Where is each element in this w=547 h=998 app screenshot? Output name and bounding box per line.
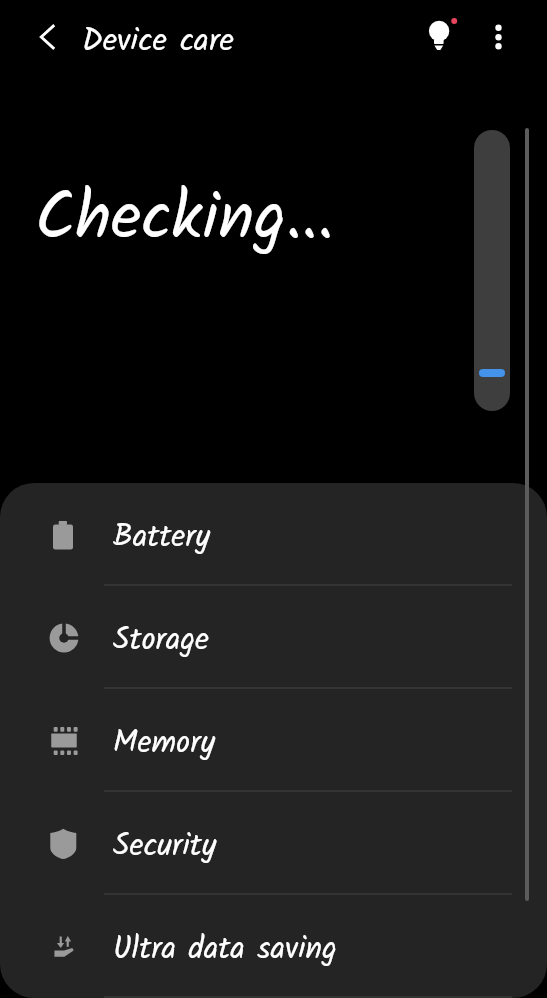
staticText: Storage (113, 616, 209, 665)
staticText: Checking... (35, 167, 334, 274)
staticText: Memory (113, 719, 215, 768)
button[interactable]: Security (0, 792, 547, 895)
staticText: Ultra data saving (113, 925, 337, 974)
button[interactable]: More options (474, 12, 523, 61)
staticText: Battery (113, 513, 211, 562)
button[interactable]: Ultra data saving (0, 895, 547, 998)
button[interactable]: Device care (82, 7, 252, 75)
button[interactable]: Navigate up (24, 13, 72, 61)
staticText: Device care (82, 16, 234, 67)
staticText: Security (113, 822, 217, 871)
button[interactable]: Memory (0, 689, 547, 792)
button[interactable]: Battery (0, 483, 547, 586)
button[interactable]: Storage (0, 586, 547, 689)
button[interactable]: Tips (419, 10, 467, 58)
